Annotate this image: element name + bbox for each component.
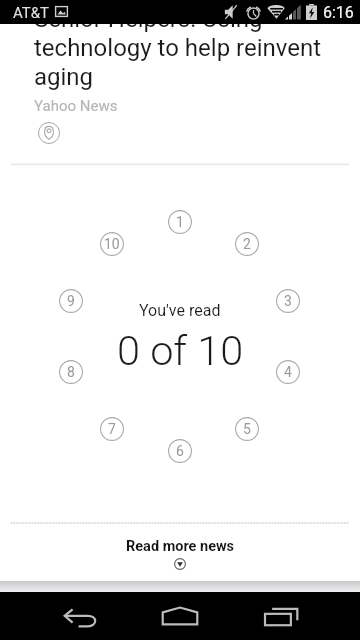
button[interactable]: Home xyxy=(140,592,219,640)
button[interactable]: 7 xyxy=(100,417,124,441)
button[interactable]: 10 xyxy=(100,232,124,256)
staticText: 3 xyxy=(284,293,292,309)
staticText: Yahoo News xyxy=(34,97,118,115)
staticText: You've read xyxy=(139,301,221,320)
button[interactable]: 1 xyxy=(168,210,192,234)
button[interactable]: Back xyxy=(40,592,119,640)
button[interactable]: 6 xyxy=(168,439,192,463)
button[interactable]: 8 xyxy=(59,360,83,384)
button[interactable]: Read more news xyxy=(0,538,360,567)
staticText: 4 xyxy=(284,364,292,380)
button[interactable]: Recent apps xyxy=(242,592,321,640)
staticText: 7 xyxy=(108,421,116,437)
staticText: AT&T xyxy=(13,4,50,22)
button[interactable]: 2 xyxy=(235,232,259,256)
button[interactable]: 3 xyxy=(276,289,300,313)
button[interactable]: Senior Helpers article xyxy=(0,0,360,164)
button[interactable]: 5 xyxy=(235,417,259,441)
staticText: 6 xyxy=(176,443,184,459)
staticText: Senior Helpers: Using technology to help… xyxy=(34,5,334,91)
button[interactable]: 4 xyxy=(276,360,300,384)
staticText: 0 of 10 xyxy=(117,326,244,375)
staticText: 10 xyxy=(104,236,120,252)
staticText: 8 xyxy=(67,364,75,380)
button[interactable]: Location xyxy=(38,122,60,144)
button[interactable]: 9 xyxy=(59,289,83,313)
staticText: 1 xyxy=(176,214,184,230)
staticText: 6:16 xyxy=(323,3,354,22)
staticText: 5 xyxy=(243,421,251,437)
staticText: 9 xyxy=(67,293,75,309)
staticText: Read more news xyxy=(126,538,235,555)
staticText: 2 xyxy=(243,236,251,252)
